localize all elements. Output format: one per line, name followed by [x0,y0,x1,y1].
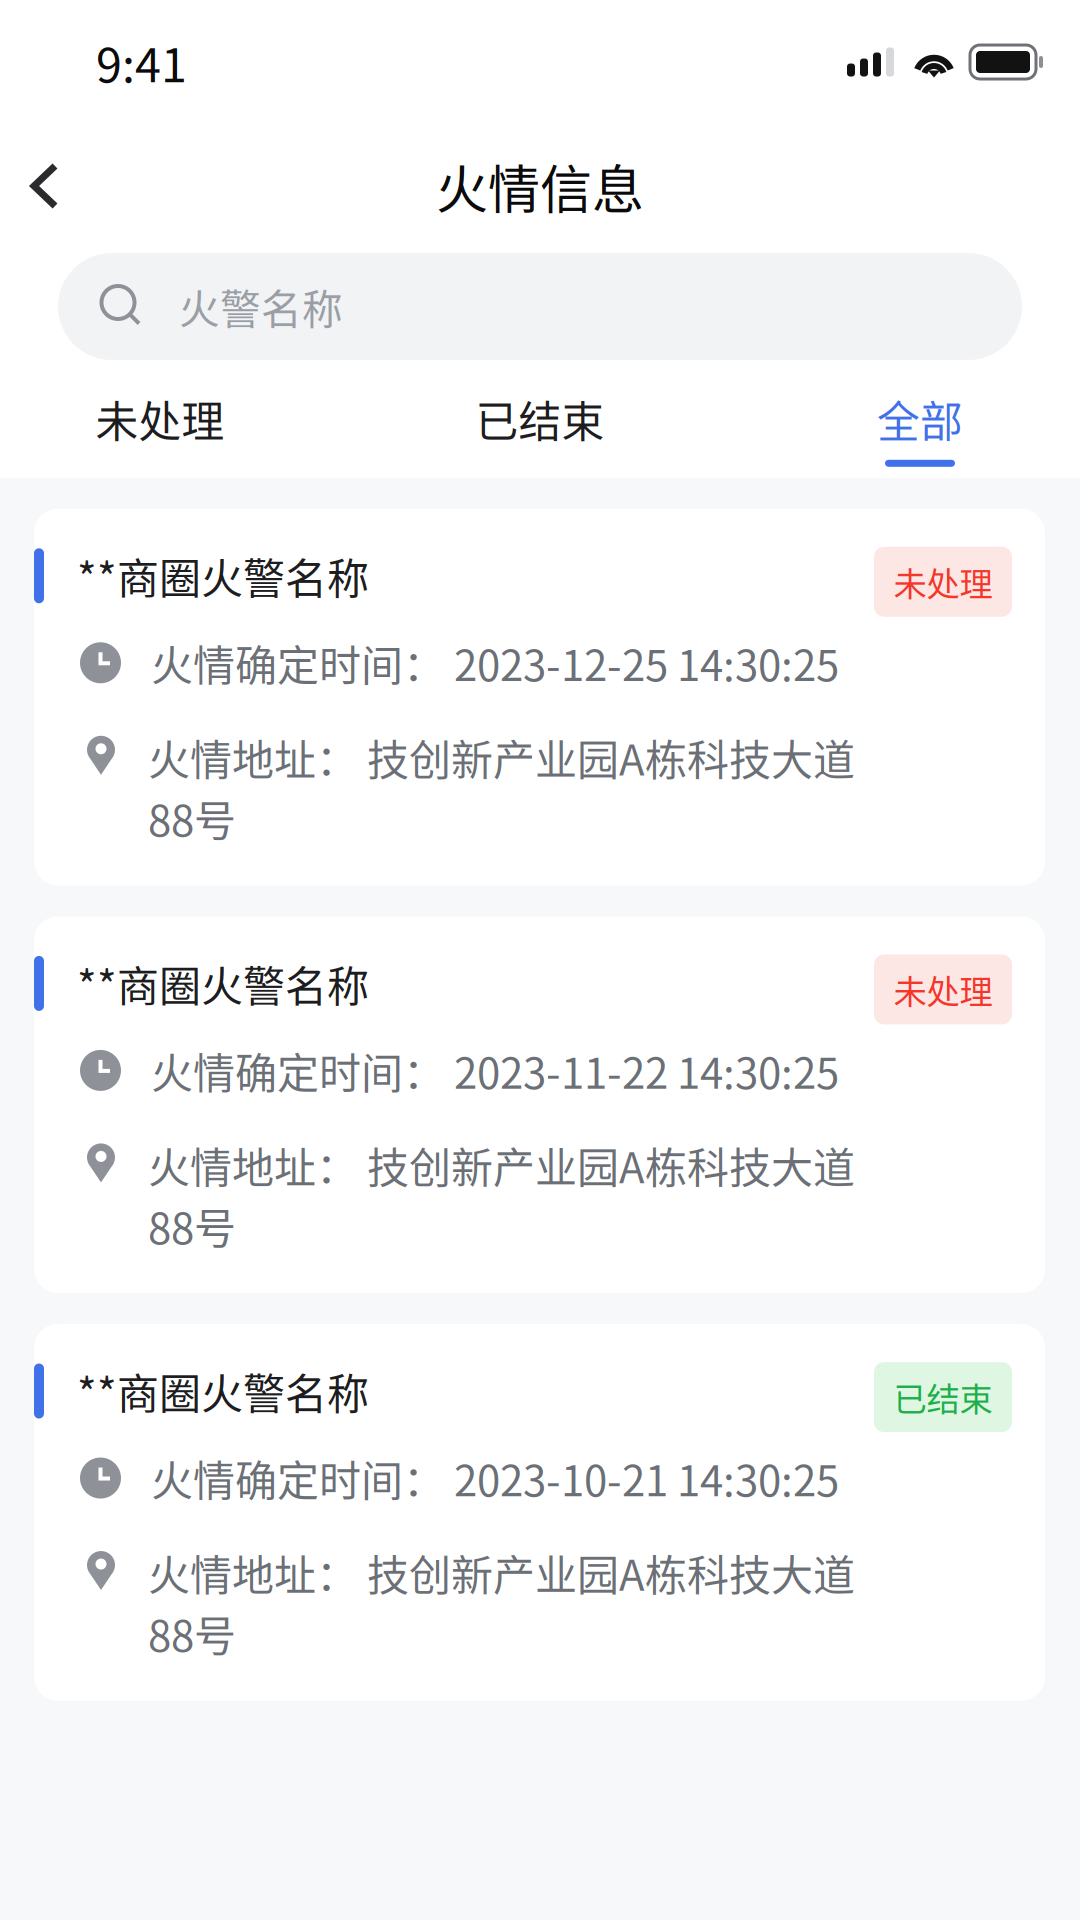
staticText: **商圈火警名称 [77,545,369,606]
staticText: 88号 [148,1603,236,1664]
staticText: 火警名称 [179,277,343,336]
button[interactable]: 全部 [790,388,1050,478]
button[interactable]: 火警名称 [58,253,1022,360]
staticText: 火情地址： 技创新产业园A栋科技大道 [148,1134,855,1195]
button[interactable]: **商圈火警名称 [34,916,1045,1293]
staticText: 已结束 [893,1373,992,1421]
button[interactable]: 返回 [0,141,90,231]
staticText: 全部 [877,388,963,450]
staticText: **商圈火警名称 [77,1361,369,1421]
staticText: 火情信息 [436,148,644,224]
staticText: 未处理 [95,388,224,450]
button[interactable]: 未处理 [30,388,290,478]
staticText: 未处理 [893,965,992,1014]
staticText: 火情确定时间： 2023-12-25 14:30:25 [151,632,839,693]
staticText: 火情确定时间： 2023-10-21 14:30:25 [151,1448,839,1508]
staticText: 火情确定时间： 2023-11-22 14:30:25 [151,1040,839,1101]
button[interactable]: **商圈火警名称 [34,509,1045,885]
staticText: 火情地址： 技创新产业园A栋科技大道 [148,1542,855,1603]
staticText: 已结束 [475,388,604,450]
staticText: **商圈火警名称 [77,953,369,1014]
staticText: 未处理 [893,558,992,606]
staticText: 9:41 [96,28,187,96]
staticText: 火情地址： 技创新产业园A栋科技大道 [148,727,855,788]
staticText: 88号 [148,788,236,848]
staticText: 88号 [148,1195,236,1256]
button[interactable]: **商圈火警名称 [34,1324,1045,1701]
button[interactable]: 已结束 [410,388,670,478]
